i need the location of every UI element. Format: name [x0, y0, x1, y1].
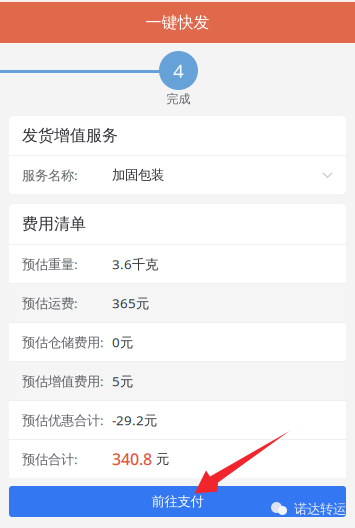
staticText: 预估合计:	[22, 450, 78, 468]
staticText: 预估运费:	[22, 294, 78, 312]
staticText: 加固包装	[112, 167, 164, 183]
staticText: 前往支付	[151, 493, 203, 510]
staticText: 诺达转运	[294, 501, 346, 517]
button[interactable]: 前往支付	[9, 486, 346, 517]
staticText: 4	[173, 58, 184, 83]
staticText: 完成	[166, 92, 190, 106]
staticText: 服务名称:	[22, 166, 78, 184]
staticText: 预估重量:	[22, 255, 78, 273]
staticText: 费用清单	[22, 214, 86, 234]
staticText: 5元	[112, 372, 133, 390]
staticText: 发货增值服务	[22, 126, 118, 145]
staticText: 预估增值费用:	[22, 372, 104, 390]
staticText: 340.8	[112, 448, 152, 470]
staticText: 元	[152, 451, 169, 467]
staticText: 3.6千克	[112, 255, 158, 273]
staticText: 0元	[112, 333, 133, 351]
staticText: 预估仓储费用:	[22, 333, 104, 351]
staticText: 预估优惠合计:	[22, 411, 104, 429]
button[interactable]: 服务名称:	[9, 155, 346, 194]
staticText: -29.2元	[112, 411, 157, 429]
staticText: 365元	[112, 294, 149, 312]
staticText: 一键快发	[145, 13, 209, 32]
